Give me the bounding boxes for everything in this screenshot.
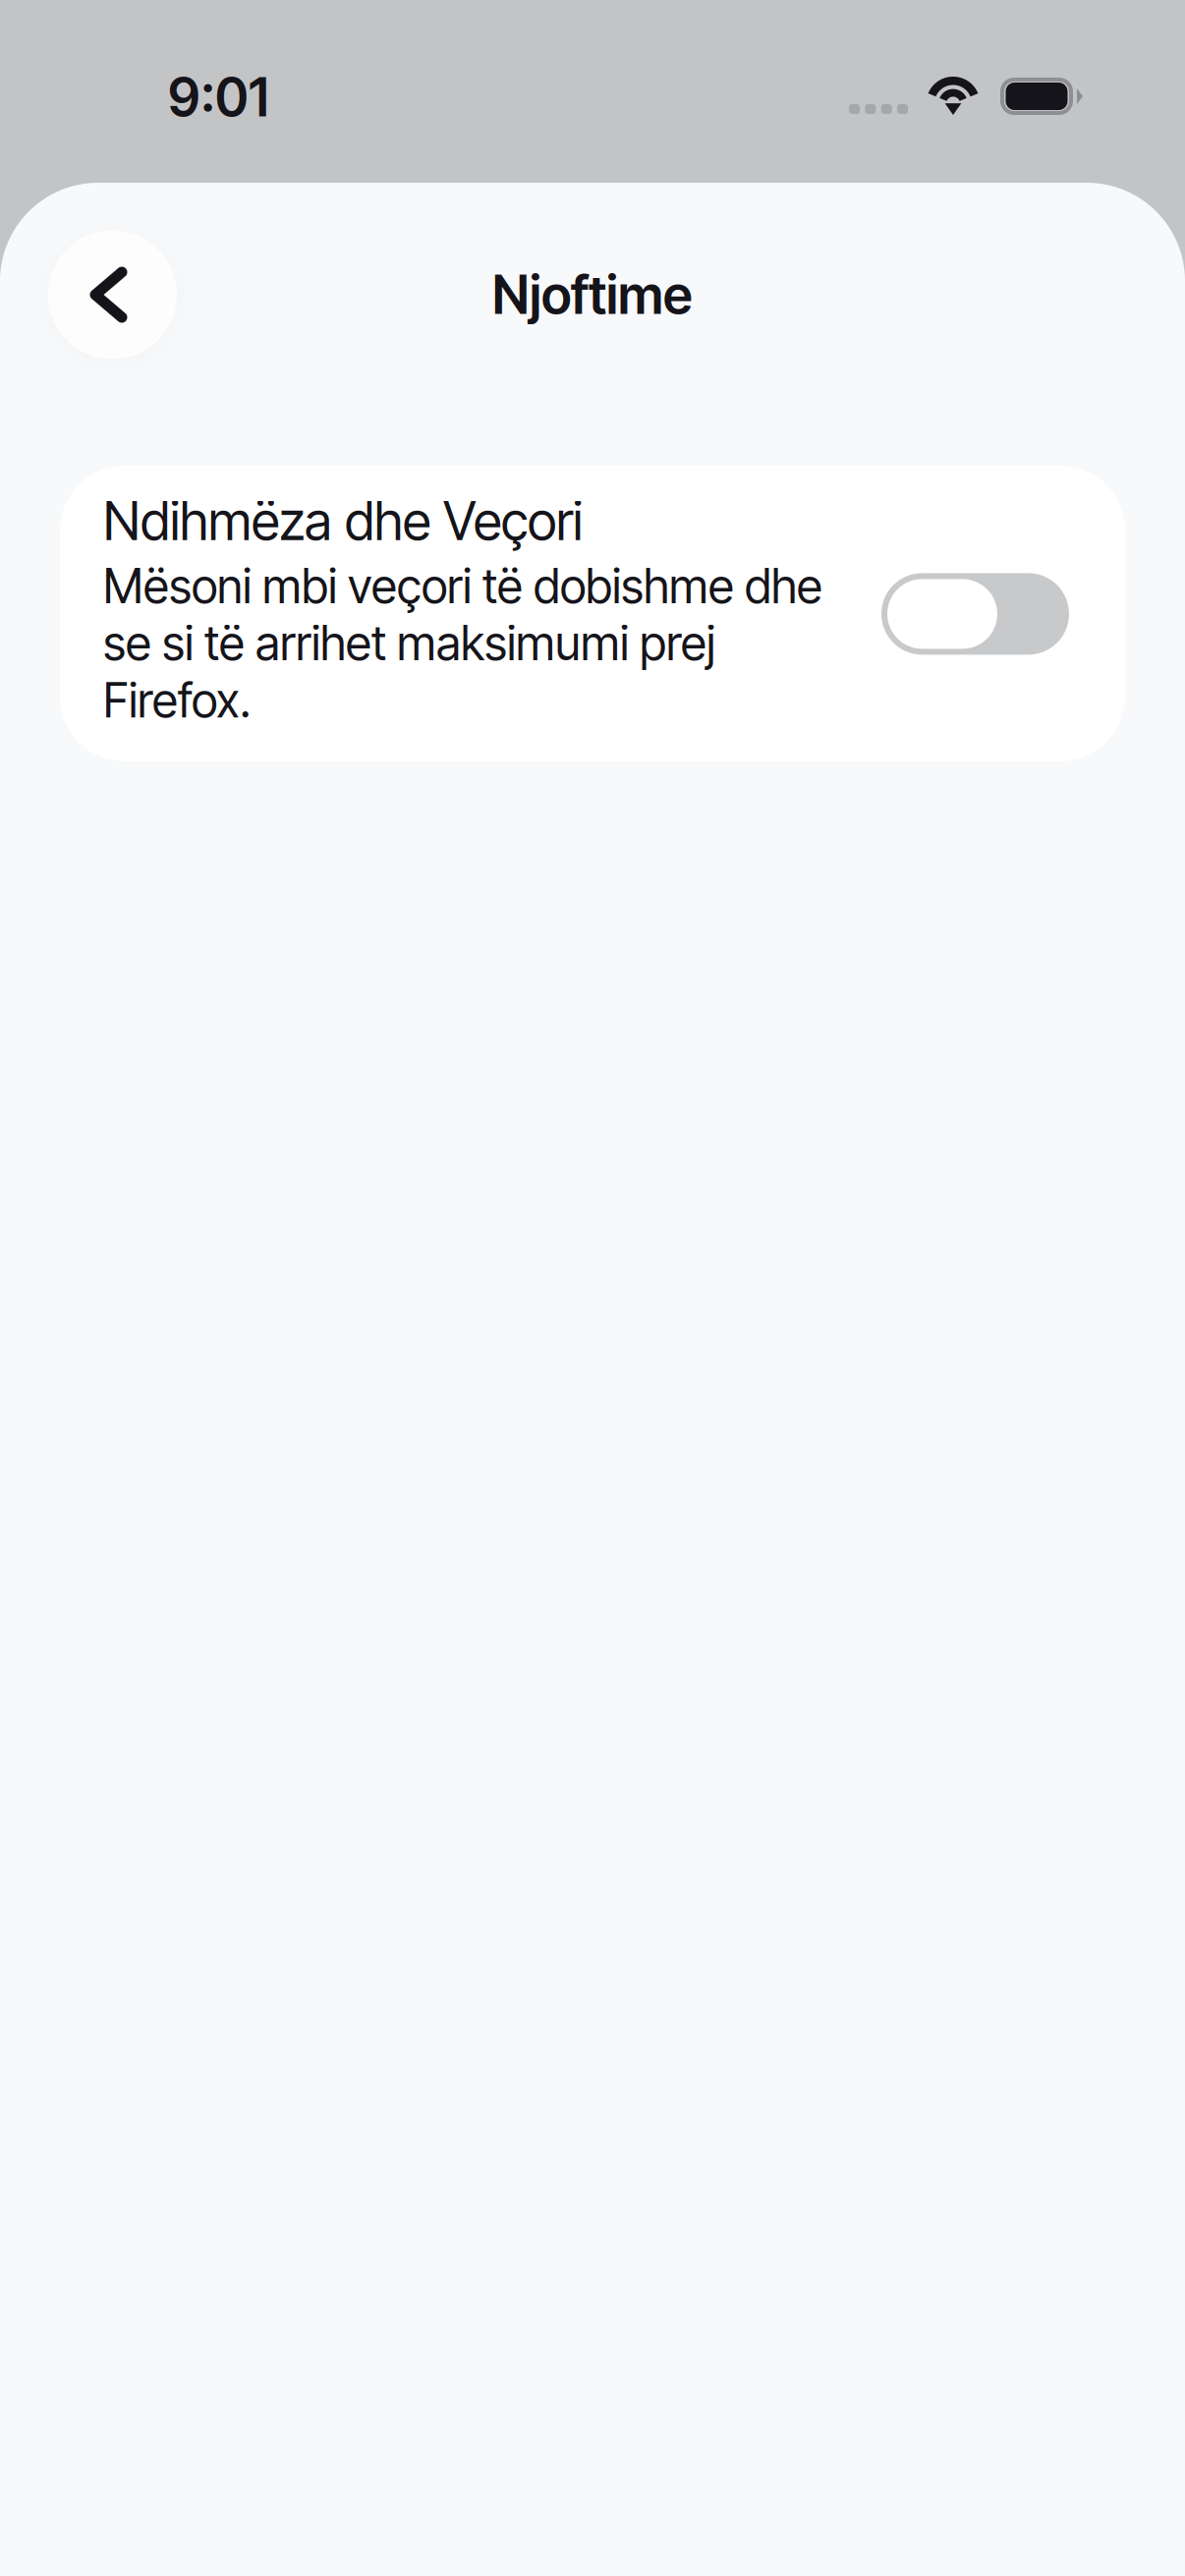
button[interactable]: Back: [48, 230, 177, 359]
button[interactable]: Ndihmëza dhe Veçori, off: [881, 573, 1069, 655]
staticText: Njoftime: [492, 263, 693, 326]
staticText: Ndihmëza dhe Veçori: [103, 489, 583, 553]
button[interactable]: Ndihmëza dhe Veçori: [60, 466, 1125, 761]
staticText: 9:01: [168, 66, 269, 129]
staticText: Mësoni mbi veçori të dobishme dhe se si …: [103, 558, 822, 729]
